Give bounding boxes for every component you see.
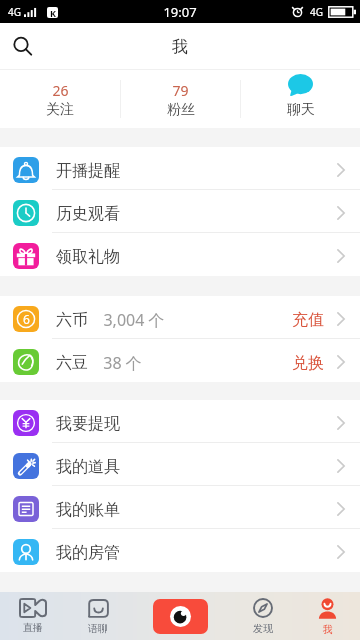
staticText: 我的房管 — [56, 543, 120, 563]
staticText: 开播提醒 — [56, 161, 120, 181]
staticText: 六豆 — [56, 353, 88, 373]
button[interactable]: 发现 — [230, 592, 295, 640]
staticText: 兑换 — [292, 353, 324, 373]
staticText: 直播 — [23, 621, 43, 634]
staticText: 历史观看 — [56, 204, 120, 224]
staticText: 我的账单 — [56, 500, 120, 520]
staticText: 领取礼物 — [56, 247, 120, 267]
staticText: K — [50, 7, 56, 18]
button[interactable]: 79 — [121, 70, 240, 128]
button[interactable]: 我要提现 — [0, 400, 360, 443]
staticText: 4G — [310, 5, 323, 19]
staticText: 充值 — [292, 310, 324, 330]
staticText: 4G — [8, 5, 21, 19]
button[interactable]: 我的道具 — [0, 443, 360, 486]
button[interactable]: 6 — [0, 296, 360, 339]
button[interactable]: Search — [6, 30, 40, 64]
staticText: 关注 — [46, 101, 74, 119]
button[interactable]: 聊天 — [241, 70, 360, 128]
button[interactable]: 历史观看 — [0, 190, 360, 233]
button[interactable]: 语聊 — [65, 592, 130, 640]
button[interactable]: 我的房管 — [0, 529, 360, 572]
staticText: 6 — [23, 311, 30, 327]
button[interactable]: 六豆 — [0, 339, 360, 382]
staticText: 聊天 — [287, 101, 315, 119]
button[interactable]: 26 — [0, 70, 120, 128]
staticText: 79 — [172, 81, 189, 100]
button[interactable]: 直播 — [0, 592, 65, 640]
staticText: 19:07 — [163, 3, 197, 21]
staticText: 26 — [52, 81, 69, 100]
staticText: 发现 — [253, 622, 273, 635]
staticText: 38 个 — [103, 352, 142, 374]
staticText: 粉丝 — [167, 101, 195, 119]
button[interactable]: 开播提醒 — [0, 147, 360, 190]
staticText: 3,004 个 — [103, 309, 165, 331]
staticText: 我的道具 — [56, 457, 120, 477]
staticText: 六币 — [56, 310, 88, 330]
staticText: 我要提现 — [56, 414, 120, 434]
button[interactable]: Home — [130, 592, 230, 640]
button[interactable]: 我 — [295, 592, 360, 640]
button[interactable]: 我的账单 — [0, 486, 360, 529]
button[interactable]: 领取礼物 — [0, 233, 360, 276]
staticText: 我 — [172, 37, 188, 57]
staticText: 我 — [323, 623, 333, 636]
staticText: 语聊 — [88, 622, 108, 635]
